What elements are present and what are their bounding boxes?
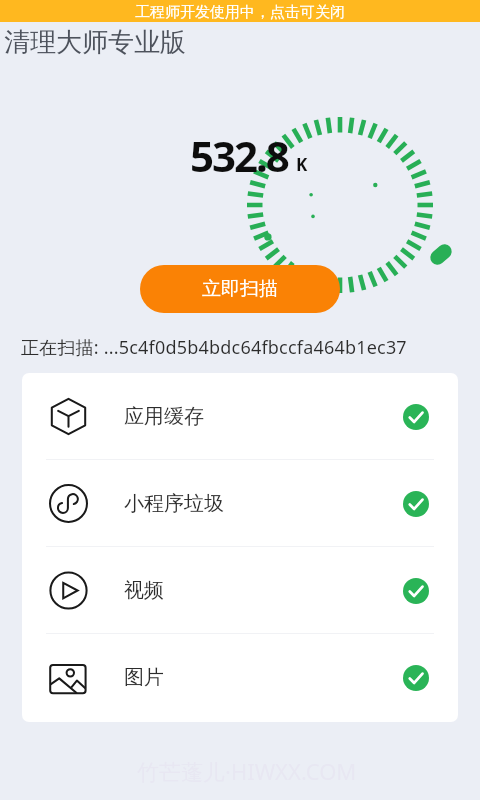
button[interactable]: 视频 (22, 547, 458, 634)
staticText: 清理大师专业版 (4, 26, 186, 59)
button[interactable]: 立即扫描 (140, 265, 340, 313)
staticText: 立即扫描 (202, 277, 278, 301)
staticText: 小程序垃圾 (124, 491, 224, 516)
button[interactable]: 图片 (22, 634, 458, 721)
button[interactable]: 小程序垃圾 (22, 460, 458, 547)
button[interactable]: 工程师开发使用中，点击可关闭 (0, 0, 480, 22)
staticText: 532.8 (190, 127, 288, 184)
button[interactable]: 应用缓存 (22, 373, 458, 460)
staticText: 图片 (124, 665, 164, 690)
staticText: 正在扫描: ...5c4f0d5b4bdc64fbccfa464b1ec37 (21, 335, 407, 360)
staticText: 工程师开发使用中，点击可关闭 (135, 3, 345, 22)
staticText: 应用缓存 (124, 404, 204, 429)
staticText: 视频 (124, 578, 164, 603)
staticText: K (296, 153, 308, 176)
